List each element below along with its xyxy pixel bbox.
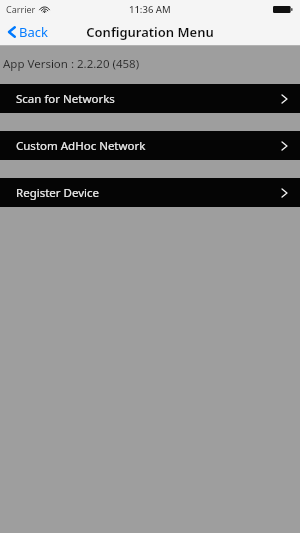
staticText: Back <box>19 23 48 41</box>
button[interactable]: Custom AdHoc Network <box>0 131 300 160</box>
staticText: Scan for Networks <box>16 91 115 107</box>
button[interactable]: Back <box>0 18 56 46</box>
staticText: Custom AdHoc Network <box>16 138 146 154</box>
staticText: Carrier <box>6 3 36 15</box>
staticText: 11:36 AM <box>129 3 171 16</box>
button[interactable]: Scan for Networks <box>0 84 300 113</box>
button[interactable]: Register Device <box>0 178 300 207</box>
staticText: Configuration Menu <box>86 23 214 41</box>
staticText: App Version : 2.2.20 (458) <box>3 56 140 72</box>
staticText: Register Device <box>16 185 100 201</box>
